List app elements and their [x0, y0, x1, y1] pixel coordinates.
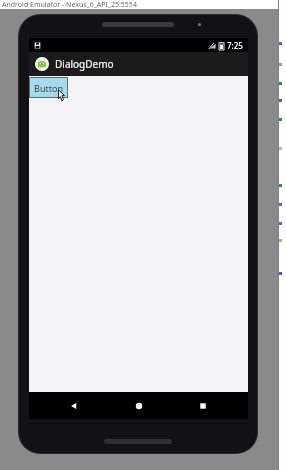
- button[interactable]: Recent apps: [183, 392, 223, 419]
- button[interactable]: Back: [54, 392, 94, 419]
- staticText: DialogDemo: [55, 57, 114, 71]
- staticText: 7:25: [227, 40, 243, 51]
- staticText: Button: [34, 82, 63, 94]
- staticText: Android Emulator - Nexus_6_API_25:5554: [2, 0, 137, 9]
- button[interactable]: Button: [29, 77, 68, 98]
- button[interactable]: Home: [119, 392, 159, 419]
